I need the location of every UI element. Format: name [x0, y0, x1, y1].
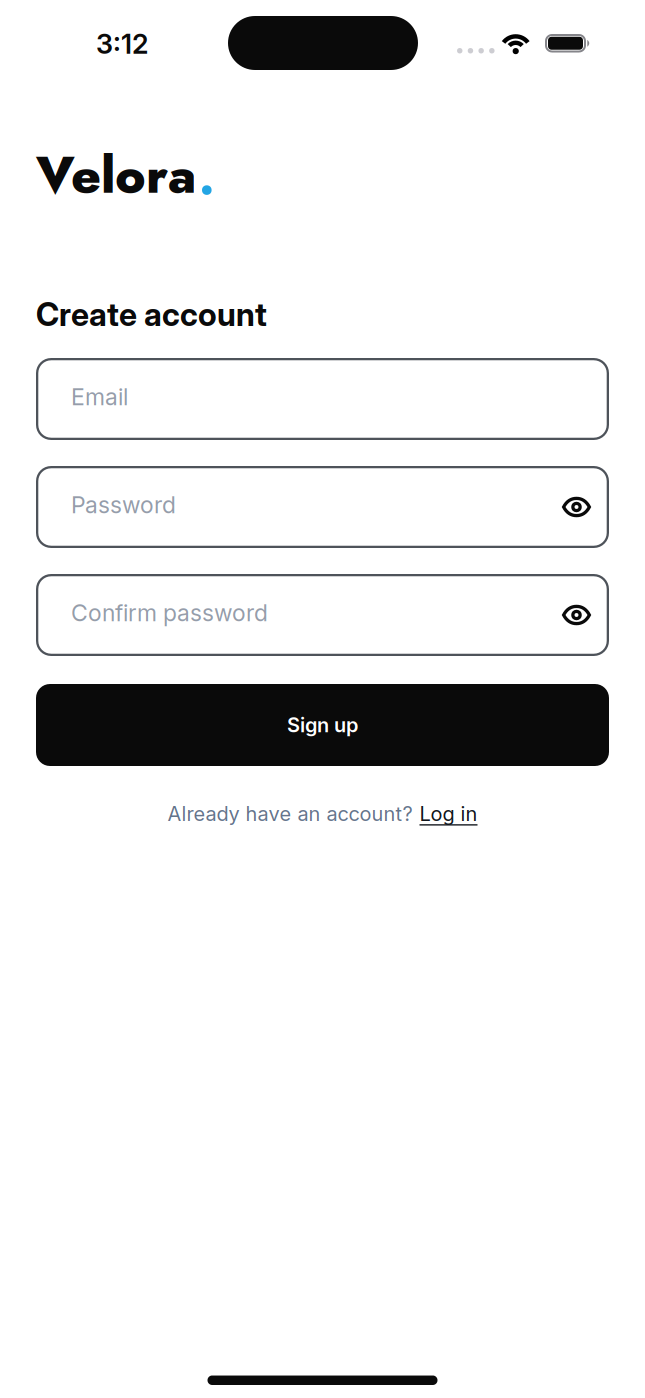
staticText: Password [71, 491, 176, 519]
staticText: Sign up [287, 713, 358, 737]
button[interactable]: Log in [419, 801, 477, 826]
button[interactable]: Sign up [36, 684, 609, 766]
staticText: Confirm password [71, 599, 268, 627]
button[interactable]: Show password [550, 605, 591, 625]
staticText: Velora [36, 138, 196, 212]
staticText: 3:12 [96, 28, 148, 60]
staticText: Already have an account? [167, 801, 412, 826]
staticText: Log in [419, 801, 477, 826]
button[interactable]: Show password [550, 497, 591, 517]
staticText: Email [71, 383, 128, 411]
staticText: Create account [36, 295, 267, 334]
